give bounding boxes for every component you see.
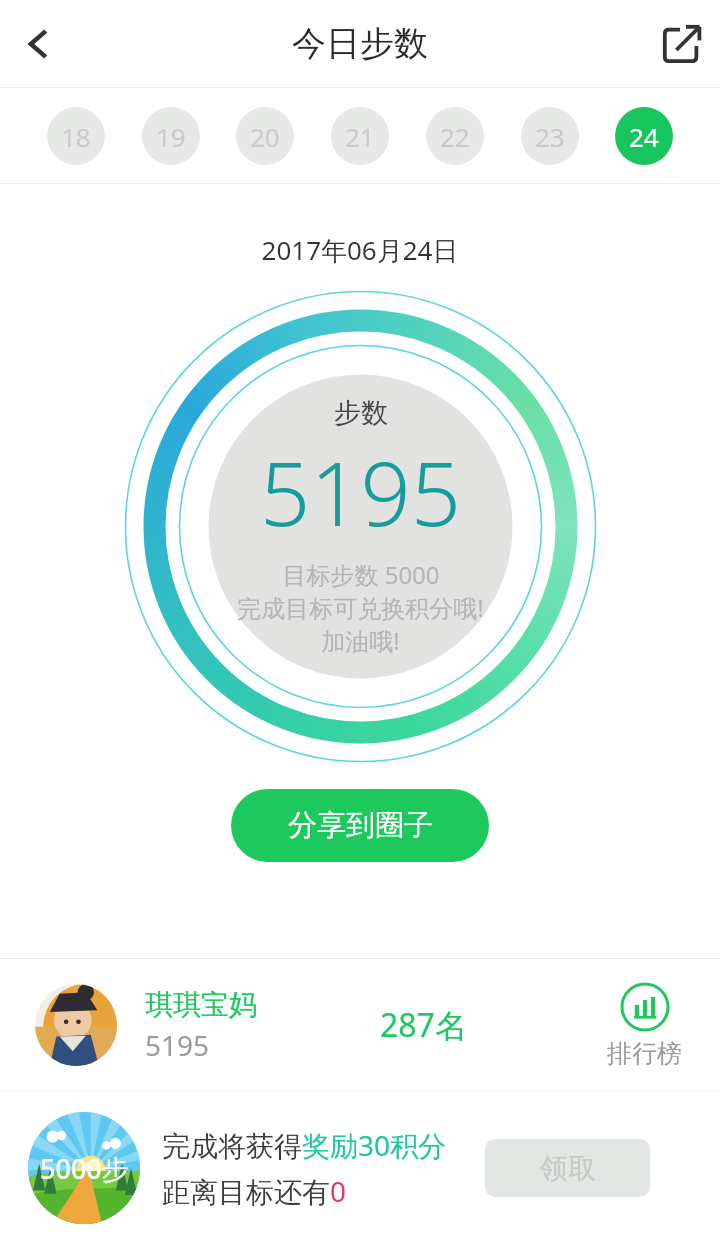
staticText: 琪琪宝妈 xyxy=(145,987,257,1022)
staticText: 排行榜 xyxy=(607,1038,682,1069)
staticText: 18 xyxy=(61,119,91,154)
staticText: 领取 xyxy=(540,1151,596,1186)
staticText: 5195 xyxy=(260,432,461,552)
button[interactable]: Share xyxy=(644,6,720,82)
staticText: 20 xyxy=(250,119,280,154)
staticText: 完成将获得奖励30积分 xyxy=(162,1126,447,1164)
staticText: 19 xyxy=(156,119,186,154)
button[interactable]: 22 xyxy=(426,107,484,165)
staticText: 分享到圈子 xyxy=(288,807,433,844)
button[interactable]: 排行榜 xyxy=(597,978,692,1073)
button[interactable]: 24 xyxy=(615,107,673,165)
staticText: 23 xyxy=(535,119,565,154)
button[interactable]: 19 xyxy=(142,107,200,165)
button[interactable]: 21 xyxy=(331,107,389,165)
staticText: 今日步数 xyxy=(292,22,428,65)
staticText: 22 xyxy=(440,119,470,154)
staticText: 21 xyxy=(345,119,375,154)
staticText: 加油哦! xyxy=(321,624,400,657)
button[interactable]: Back xyxy=(0,6,76,82)
staticText: 距离目标还有0 xyxy=(162,1172,347,1210)
staticText: 24 xyxy=(629,119,659,154)
staticText: 5000步 xyxy=(40,1150,129,1187)
staticText: 步数 xyxy=(334,396,388,430)
button[interactable]: 18 xyxy=(47,107,105,165)
staticText: 目标步数 5000 xyxy=(282,558,440,591)
staticText: 2017年06月24日 xyxy=(0,232,720,268)
button[interactable]: 领取 xyxy=(485,1139,650,1197)
button[interactable]: 分享到圈子 xyxy=(231,789,489,862)
staticText: 完成目标可兑换积分哦! xyxy=(237,591,484,624)
button[interactable]: 5000步 xyxy=(28,1112,140,1224)
staticText: 5195 xyxy=(145,1026,210,1064)
button[interactable]: 23 xyxy=(521,107,579,165)
button[interactable]: 20 xyxy=(236,107,294,165)
staticText: 287名 xyxy=(380,1003,467,1047)
